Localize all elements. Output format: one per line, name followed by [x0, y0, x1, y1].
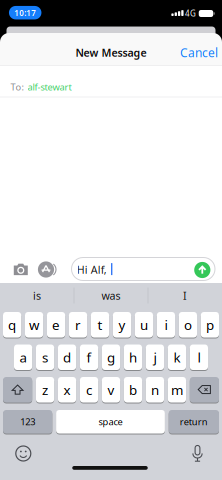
staticText: was	[101, 288, 120, 303]
staticText: Hi Alf,	[77, 263, 107, 277]
button[interactable]: o	[179, 312, 197, 337]
button[interactable]: w	[25, 312, 43, 337]
button[interactable]: h	[124, 344, 142, 370]
staticText: 10:17	[14, 7, 36, 18]
button[interactable]: Cancel	[180, 44, 218, 60]
staticText: return	[180, 416, 208, 428]
button[interactable]: s	[36, 344, 54, 370]
button[interactable]: I	[150, 285, 220, 305]
staticText: n	[151, 381, 159, 399]
staticText: k	[173, 348, 180, 366]
button[interactable]: Send	[194, 261, 211, 278]
button[interactable]: z	[36, 377, 54, 402]
button[interactable]: u	[135, 312, 153, 337]
button[interactable]: b	[124, 377, 142, 402]
staticText: u	[140, 316, 148, 334]
button[interactable]: j	[146, 344, 164, 370]
staticText: y	[118, 316, 125, 334]
staticText: space	[98, 416, 122, 428]
button[interactable]: d	[58, 344, 76, 370]
button[interactable]: g	[102, 344, 120, 370]
button[interactable]: p	[201, 312, 219, 337]
staticText: m	[171, 381, 183, 399]
button[interactable]: Delete	[190, 377, 219, 402]
staticText: l	[197, 348, 200, 366]
staticText: g	[107, 348, 115, 366]
staticText: 4G	[185, 8, 196, 19]
staticText: t	[97, 316, 102, 334]
button[interactable]: r	[69, 312, 87, 337]
button[interactable]: To:	[0, 66, 222, 97]
button[interactable]: 123	[3, 410, 52, 433]
staticText: x	[63, 381, 70, 399]
button[interactable]: y	[113, 312, 131, 337]
staticText: a	[20, 348, 27, 366]
staticText: d	[63, 348, 71, 366]
button[interactable]: e	[47, 312, 65, 337]
button[interactable]: Shift	[3, 377, 32, 402]
staticText: v	[107, 381, 114, 399]
staticText: j	[153, 348, 156, 366]
staticText: o	[184, 316, 192, 334]
button[interactable]: return	[169, 410, 219, 433]
staticText: New Message	[75, 45, 146, 60]
button[interactable]: space	[56, 410, 165, 433]
staticText: b	[129, 381, 137, 399]
staticText: 123	[20, 416, 35, 428]
button[interactable]: k	[168, 344, 186, 370]
staticText: h	[129, 348, 137, 366]
staticText: w	[29, 316, 39, 334]
staticText: s	[42, 348, 48, 366]
button[interactable]: x	[58, 377, 76, 402]
staticText: is	[33, 288, 41, 303]
staticText: r	[75, 316, 81, 334]
button[interactable]: Dictate	[190, 444, 204, 464]
button[interactable]: f	[80, 344, 98, 370]
button[interactable]: a	[14, 344, 32, 370]
button[interactable]: m	[168, 377, 186, 402]
button[interactable]: v	[102, 377, 120, 402]
staticText: e	[52, 316, 60, 334]
staticText: i	[164, 316, 167, 334]
button[interactable]: n	[146, 377, 164, 402]
button[interactable]: was	[76, 285, 146, 305]
staticText: alf-stewart	[27, 81, 71, 93]
button[interactable]: i	[157, 312, 175, 337]
button[interactable]: t	[91, 312, 109, 337]
button[interactable]: l	[190, 344, 208, 370]
staticText: To:	[10, 81, 24, 93]
staticText: Cancel	[180, 44, 218, 60]
staticText: q	[8, 316, 16, 334]
button[interactable]: Camera	[11, 260, 31, 278]
button[interactable]: Message	[71, 257, 215, 280]
button[interactable]: Emoji	[14, 444, 32, 462]
staticText: f	[86, 348, 91, 366]
button[interactable]: q	[3, 312, 21, 337]
staticText: z	[42, 381, 48, 399]
staticText: c	[86, 381, 92, 399]
button[interactable]: c	[80, 377, 98, 402]
staticText: I	[183, 288, 187, 303]
button[interactable]: is	[2, 285, 72, 305]
button[interactable]: Apps	[37, 260, 55, 278]
staticText: p	[206, 316, 214, 334]
